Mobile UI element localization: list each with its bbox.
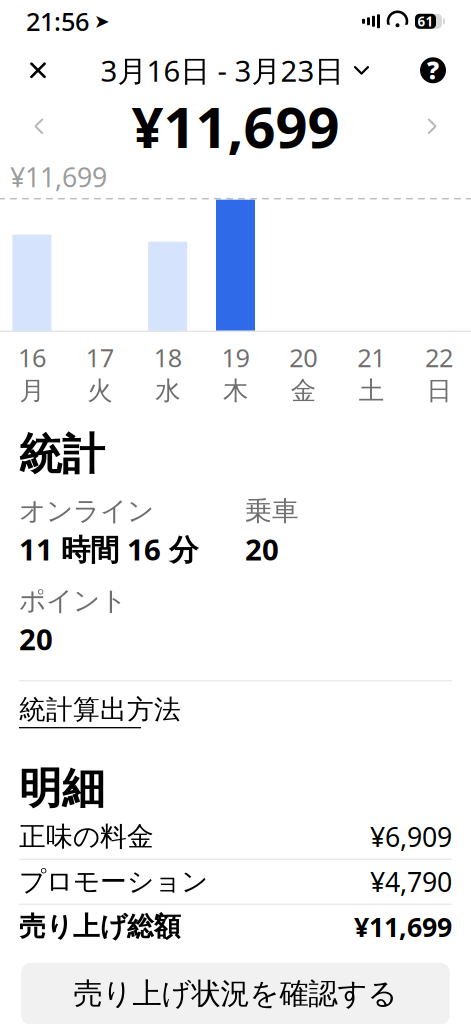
staticText: 21 xyxy=(357,341,385,374)
staticText: ¥11,699 xyxy=(354,909,452,944)
staticText: 日 xyxy=(427,375,452,406)
button[interactable]: 3月16日 - 3月23日 xyxy=(94,46,376,94)
staticText: 土 xyxy=(359,375,384,406)
staticText: 木 xyxy=(223,375,248,406)
staticText: プロモーション xyxy=(19,865,208,898)
button[interactable]: 閉じる xyxy=(14,46,62,94)
staticText: 乗車 xyxy=(245,495,299,528)
staticText: 正味の料金 xyxy=(19,820,154,853)
staticText: 21:56 xyxy=(26,4,89,38)
staticText: 月 xyxy=(19,375,44,406)
staticText: 22 xyxy=(425,341,453,374)
staticText: ¥11,699 xyxy=(10,159,107,195)
button[interactable]: ヘルプ xyxy=(409,46,457,94)
staticText: 統計算出方法 xyxy=(19,693,181,726)
staticText: ? xyxy=(427,54,439,86)
staticText: 売り上げ状況を確認する xyxy=(73,976,397,1012)
staticText: 16 xyxy=(18,341,46,374)
staticText: ¥4,790 xyxy=(370,864,452,899)
staticText: ¥6,909 xyxy=(370,819,452,854)
staticText: ¥11,699 xyxy=(131,89,339,163)
staticText: 18 xyxy=(154,341,182,374)
staticText: 売り上げ総額 xyxy=(19,910,181,943)
staticText: ➤ xyxy=(94,11,110,32)
button[interactable]: 売り上げ状況を確認する xyxy=(21,963,450,1024)
staticText: 20 xyxy=(245,530,279,569)
staticText: 火 xyxy=(87,375,112,406)
staticText: 3月16日 - 3月23日 xyxy=(100,51,343,90)
staticText: 20 xyxy=(289,341,317,374)
staticText: 水 xyxy=(155,375,180,406)
staticText: 19 xyxy=(221,341,249,374)
staticText: 17 xyxy=(86,341,114,374)
staticText: 金 xyxy=(291,375,316,406)
button[interactable]: 前の週 xyxy=(12,99,66,153)
staticText: 20 xyxy=(19,619,53,658)
staticText: 11 時間 16 分 xyxy=(19,530,198,569)
staticText: 統計 xyxy=(19,428,105,481)
staticText: オンライン xyxy=(19,495,154,528)
staticText: ポイント xyxy=(19,585,127,617)
button[interactable]: 次の週 xyxy=(405,99,459,153)
staticText: 明細 xyxy=(19,762,105,815)
staticText: 61 xyxy=(417,12,433,30)
button[interactable]: 統計算出方法 xyxy=(19,681,181,740)
